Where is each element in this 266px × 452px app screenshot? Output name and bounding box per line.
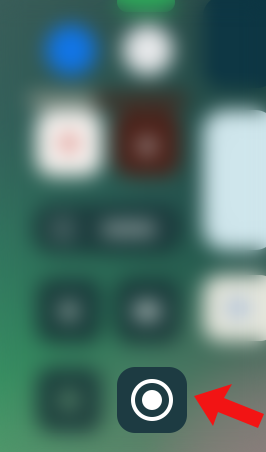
button[interactable]: Screen Recording — [117, 367, 187, 433]
